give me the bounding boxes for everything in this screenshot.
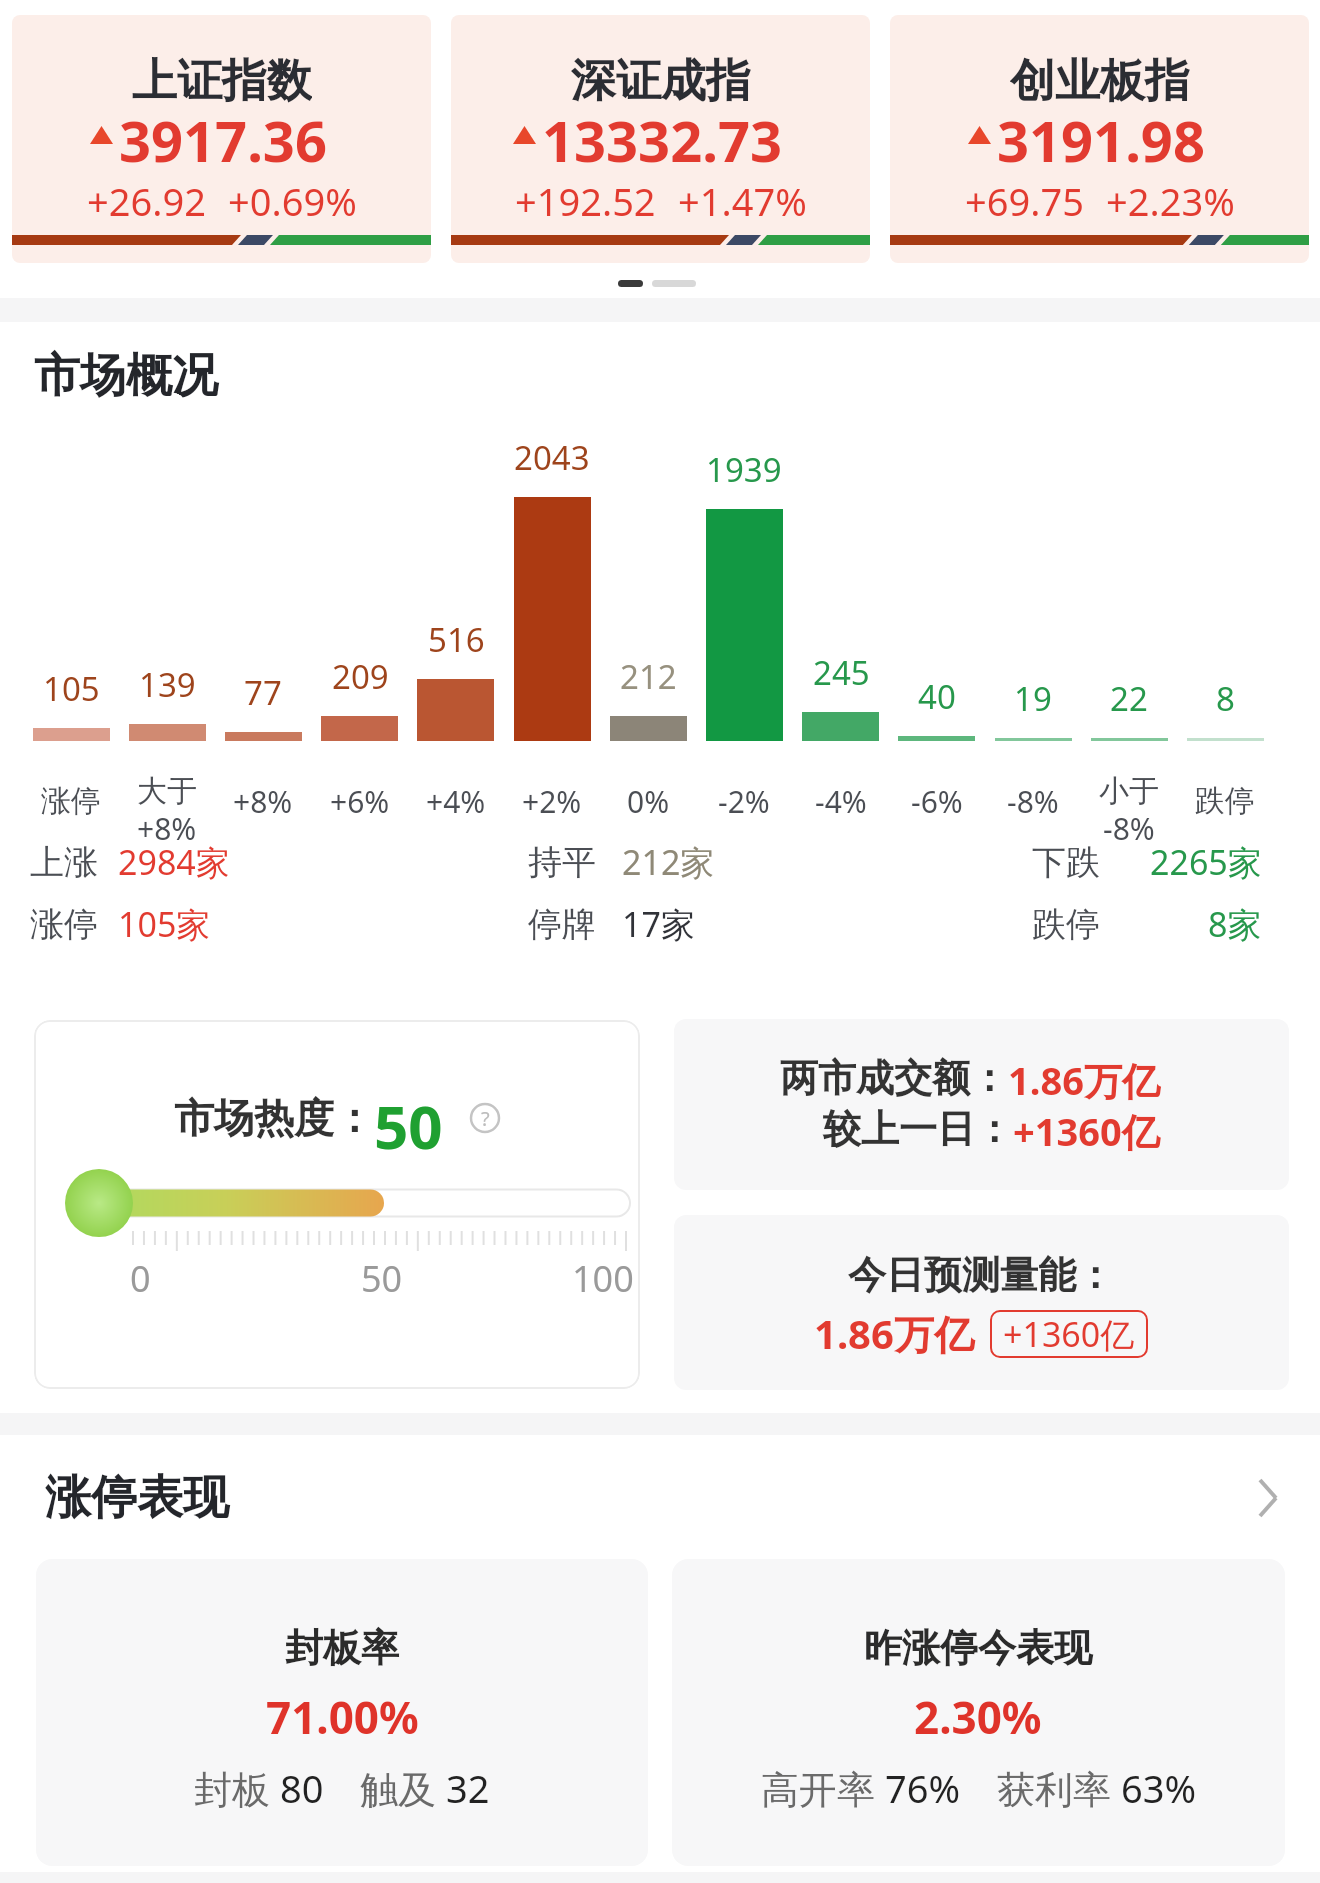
staticText: 上涨: [30, 841, 98, 884]
staticText: 涨停: [41, 782, 101, 820]
staticText: 涨停表现: [45, 1469, 229, 1527]
staticText: 深证成指: [571, 53, 751, 109]
staticText: 32: [446, 1762, 490, 1812]
staticText: 100: [572, 1254, 634, 1303]
staticText: 下跌: [1032, 841, 1100, 884]
staticText: -6%: [911, 781, 963, 822]
staticText: +2%: [522, 781, 582, 822]
staticText: 市场热度：: [174, 1093, 374, 1143]
staticText: 封板率: [285, 1624, 399, 1672]
button[interactable]: 涨停表现: [0, 1460, 1320, 1536]
staticText: 50: [374, 1085, 443, 1151]
button[interactable]: 市场热度：: [34, 1020, 640, 1389]
staticText: +8%: [137, 808, 197, 849]
staticText: 245: [813, 650, 870, 695]
staticText: 1.86万亿: [1008, 1054, 1160, 1106]
staticText: 2265家: [1150, 839, 1262, 885]
staticText: +192.52: [515, 175, 656, 225]
staticText: 3917.36: [119, 102, 327, 168]
staticText: 今日预测量能：: [848, 1251, 1114, 1299]
staticText: 停牌: [528, 903, 596, 946]
staticText: 较上一日：: [823, 1105, 1013, 1153]
staticText: +6%: [330, 781, 390, 822]
staticText: ?: [481, 1105, 490, 1132]
staticText: -8%: [1007, 781, 1059, 822]
staticText: 获利率: [997, 1762, 1121, 1812]
staticText: +8%: [233, 781, 293, 822]
staticText: 516: [428, 617, 485, 662]
button[interactable]: 深证成指: [451, 15, 870, 263]
staticText: 小于: [1099, 772, 1159, 810]
staticText: 持平: [528, 841, 596, 884]
staticText: 63%: [1121, 1762, 1197, 1812]
button[interactable]: 封板率: [36, 1559, 648, 1866]
staticText: 0%: [627, 781, 670, 822]
staticText: 2984家: [118, 839, 230, 885]
staticText: 高开率: [761, 1762, 885, 1812]
staticText: 19: [1014, 676, 1052, 721]
staticText: 大于: [137, 772, 197, 810]
staticText: 105: [43, 666, 100, 711]
staticText: 8: [1216, 676, 1235, 721]
staticText: 13332.73: [542, 102, 782, 168]
staticText: 跌停: [1195, 782, 1255, 820]
staticText: +2.23%: [1106, 175, 1235, 225]
button[interactable]: 创业板指: [890, 15, 1309, 263]
button[interactable]: 两市成交额：: [674, 1019, 1289, 1190]
staticText: 1.86万亿: [814, 1306, 974, 1361]
staticText: 昨涨停今表现: [864, 1624, 1092, 1672]
staticText: 1939: [706, 447, 782, 492]
staticText: 跌停: [1032, 903, 1100, 946]
staticText: 22: [1110, 676, 1148, 721]
staticText: 8家: [1208, 901, 1262, 947]
staticText: 40: [918, 674, 956, 719]
staticText: 触及: [360, 1762, 446, 1812]
staticText: -2%: [718, 781, 770, 822]
button[interactable]: 上证指数: [12, 15, 431, 263]
staticText: 71.00%: [266, 1687, 419, 1747]
staticText: +0.69%: [228, 175, 357, 225]
staticText: 3191.98: [997, 102, 1205, 168]
staticText: +1360亿: [1003, 1311, 1135, 1357]
staticText: 50: [361, 1254, 403, 1303]
staticText: +1.47%: [678, 175, 807, 225]
staticText: 创业板指: [1010, 53, 1190, 109]
staticText: +69.75: [965, 175, 1084, 225]
staticText: 上证指数: [132, 53, 312, 109]
button[interactable]: 昨涨停今表现: [672, 1559, 1285, 1866]
staticText: 139: [139, 662, 196, 707]
staticText: 涨停: [30, 903, 98, 946]
staticText: -8%: [1103, 808, 1155, 849]
staticText: 2043: [514, 435, 590, 480]
staticText: 76%: [885, 1762, 961, 1812]
button[interactable]: 今日预测量能：: [674, 1215, 1289, 1390]
staticText: 209: [332, 654, 389, 699]
staticText: 17家: [622, 901, 695, 947]
staticText: 两市成交额：: [780, 1054, 1008, 1102]
staticText: 0: [130, 1254, 151, 1303]
staticText: 105家: [118, 901, 211, 947]
staticText: +1360亿: [1013, 1105, 1160, 1157]
staticText: +4%: [426, 781, 486, 822]
staticText: 212家: [622, 839, 715, 885]
staticText: 2.30%: [914, 1687, 1042, 1747]
staticText: 212: [620, 654, 677, 699]
staticText: -4%: [815, 781, 867, 822]
staticText: 77: [244, 670, 282, 715]
staticText: 80: [280, 1762, 324, 1812]
staticText: 封板: [194, 1762, 280, 1812]
staticText: 市场概况: [34, 347, 218, 405]
staticText: +26.92: [87, 175, 206, 225]
